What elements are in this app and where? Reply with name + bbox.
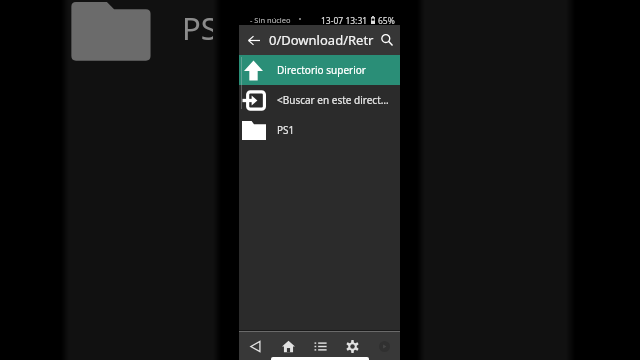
staticText: <Buscar en este direct… [277,93,389,107]
staticText: PS1 [277,123,295,137]
staticText: Directorio superior [277,63,366,77]
staticText: PS [182,7,218,49]
staticText: - Sin núcleo [250,15,291,25]
button[interactable]: Assistant [379,341,390,352]
button[interactable]: Back [239,332,272,360]
button[interactable]: PS1 [239,115,400,145]
button[interactable]: Search [376,25,400,55]
button[interactable]: Settings [336,332,368,360]
button[interactable]: <Buscar en este direct… [239,85,400,115]
button[interactable]: Recent [304,332,336,360]
staticText: 0/Download/Retr [269,31,376,49]
button[interactable]: Back [239,25,268,55]
staticText: 65% [378,15,395,25]
staticText: 13-07 13:31 [321,15,368,25]
button[interactable]: Home [272,332,304,360]
button[interactable]: Directorio superior [239,55,400,85]
